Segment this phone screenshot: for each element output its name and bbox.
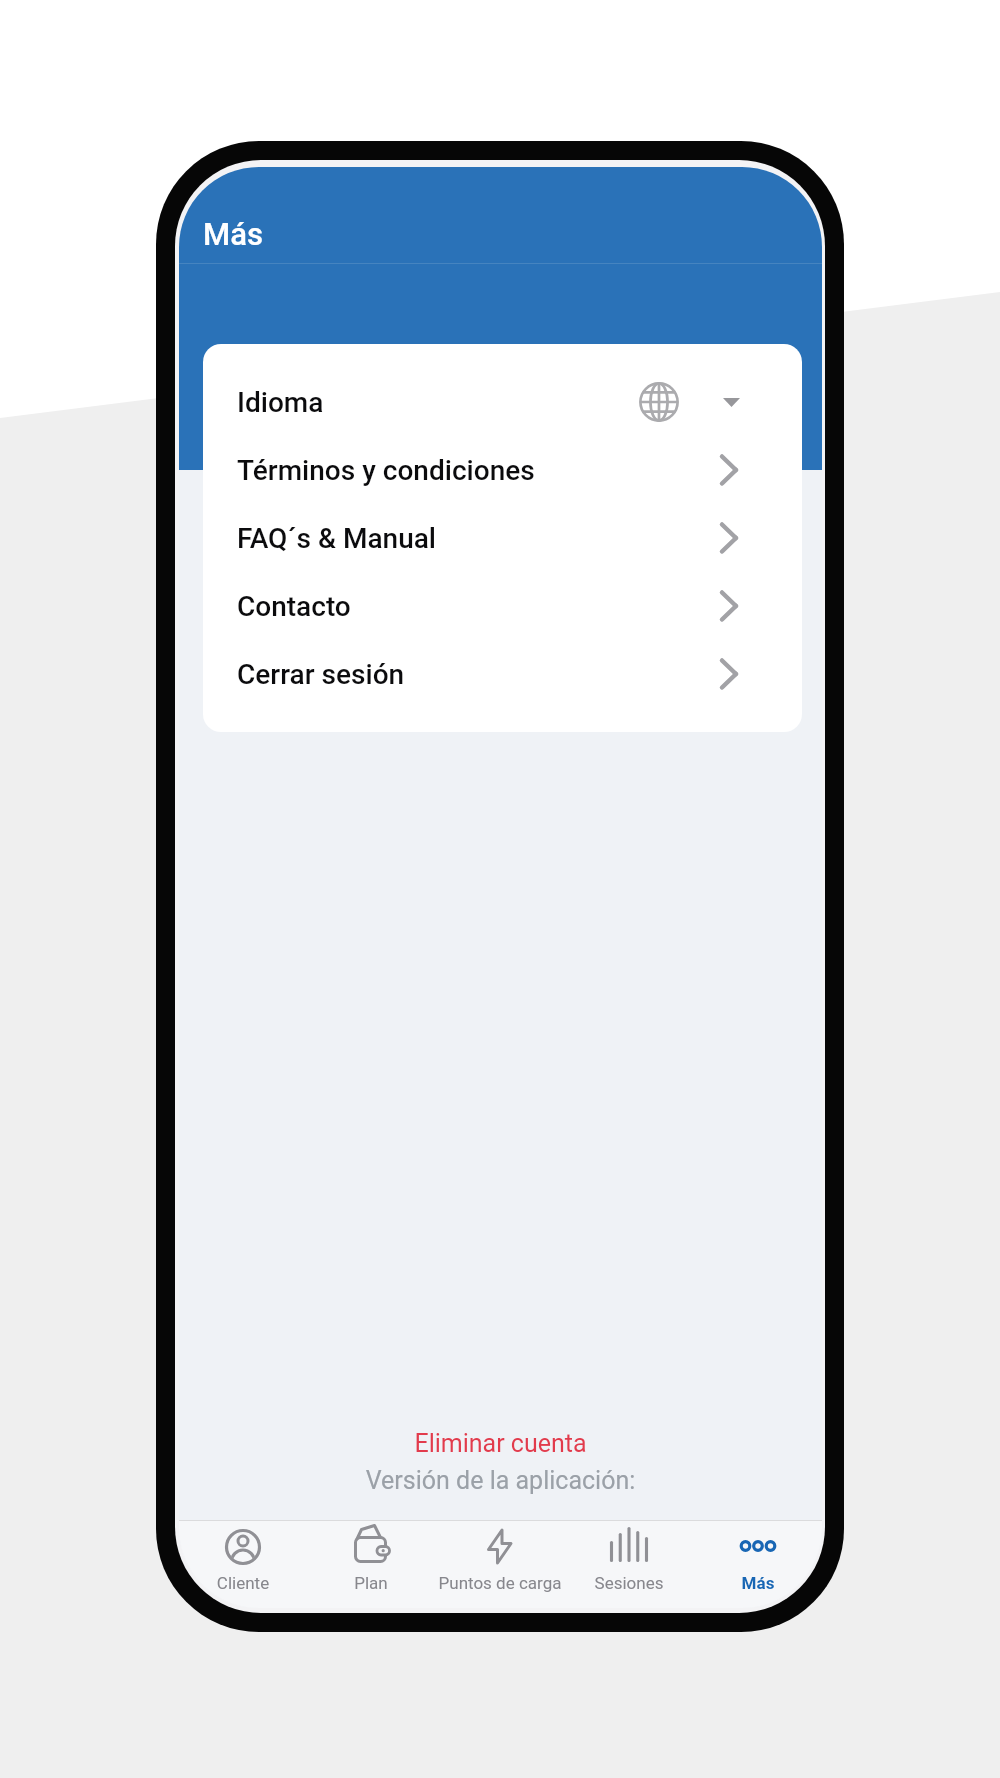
staticText: Cerrar sesión — [237, 658, 405, 691]
staticText: Contacto — [237, 590, 351, 623]
staticText: Puntos de carga — [425, 1573, 575, 1593]
staticText: Términos y condiciones — [237, 454, 535, 487]
button[interactable]: Cliente — [179, 1521, 307, 1608]
button[interactable]: Sesiones — [564, 1521, 693, 1608]
button[interactable]: Eliminar cuenta — [179, 1429, 822, 1458]
button[interactable]: FAQ´s & Manual — [203, 504, 802, 572]
staticText: Versión de la aplicación: — [179, 1466, 822, 1495]
staticText: Idioma — [237, 386, 324, 419]
button[interactable]: Términos y condiciones — [203, 436, 802, 504]
staticText: Sesiones — [554, 1573, 704, 1593]
button[interactable]: Puntos de carga — [435, 1521, 564, 1608]
staticText: Más — [683, 1573, 822, 1593]
staticText: FAQ´s & Manual — [237, 522, 437, 555]
staticText: Plan — [296, 1573, 446, 1593]
button[interactable]: Contacto — [203, 572, 802, 640]
button[interactable]: Plan — [307, 1521, 435, 1608]
staticText: Cliente — [179, 1573, 318, 1593]
button[interactable]: Más — [693, 1521, 822, 1608]
button[interactable]: Cerrar sesión — [203, 640, 802, 708]
staticText: Más — [203, 216, 263, 252]
button[interactable]: Idioma — [203, 368, 802, 436]
